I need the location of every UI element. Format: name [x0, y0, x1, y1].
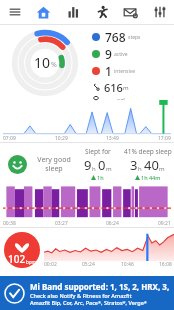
- staticText: 10:46: [121, 261, 134, 268]
- staticText: 41% deep sleep: [124, 147, 172, 156]
- staticText: 616: [104, 80, 123, 95]
- staticText: cal: [117, 96, 125, 100]
- button[interactable]: 10: [0, 25, 174, 100]
- staticText: Slept for: [85, 147, 111, 156]
- staticText: 1: [105, 63, 112, 79]
- button[interactable]: Settings: [145, 0, 174, 24]
- button[interactable]: 07:09: [0, 100, 174, 142]
- staticText: 1h: [97, 174, 104, 181]
- staticText: %: [51, 60, 57, 70]
- staticText: 9: [84, 156, 92, 174]
- button[interactable]: Workout: [87, 0, 116, 24]
- staticText: 07:09: [3, 135, 16, 142]
- staticText: Mi Band supported: 1, 1S, 2, HRX, 3,: [30, 281, 170, 292]
- staticText: 05:24: [82, 261, 95, 268]
- staticText: 03:27: [55, 220, 68, 227]
- staticText: bpm: [26, 259, 36, 265]
- staticText: 17:09: [158, 135, 171, 142]
- staticText: h: [92, 165, 96, 173]
- button[interactable]: Very good sleep: [0, 143, 174, 185]
- staticText: 10: [34, 53, 51, 72]
- staticText: 00:02: [44, 261, 57, 268]
- staticText: 102: [8, 252, 26, 266]
- button[interactable]: 00:38: [0, 185, 174, 227]
- staticText: 10:29: [55, 135, 68, 142]
- staticText: 00:38: [3, 220, 16, 227]
- button[interactable]: Mi Band supported: 1, 1S, 2, HRX, 3,: [0, 276, 174, 310]
- staticText: intensive: [114, 68, 136, 75]
- staticText: h: [138, 165, 142, 173]
- staticText: Amazfit Bip, Cor, Arc, Pace*, Stratos*, …: [30, 299, 147, 306]
- staticText: m: [159, 165, 165, 173]
- button[interactable]: Home: [29, 0, 58, 24]
- button[interactable]: Menu: [0, 0, 29, 24]
- staticText: 0: [98, 156, 106, 174]
- staticText: 9: [105, 46, 112, 62]
- staticText: m: [123, 84, 129, 92]
- staticText: Check also Notify & Fitness for Amazfit: [30, 292, 132, 299]
- staticText: 06:24: [106, 220, 119, 227]
- staticText: 768: [105, 29, 126, 45]
- button[interactable]: Messages: [116, 0, 145, 24]
- staticText: 16:08: [159, 261, 172, 268]
- staticText: 09:21: [158, 220, 171, 227]
- staticText: 3: [130, 156, 138, 174]
- button[interactable]: Statistics: [58, 0, 87, 24]
- staticText: 13:49: [106, 135, 119, 142]
- staticText: Very good sleep: [34, 155, 74, 173]
- staticText: active: [114, 51, 128, 58]
- staticText: steps: [128, 34, 141, 41]
- button[interactable]: 102: [0, 228, 174, 272]
- staticText: 1h 44m: [141, 174, 161, 181]
- staticText: 40: [144, 156, 159, 174]
- staticText: m: [106, 165, 112, 173]
